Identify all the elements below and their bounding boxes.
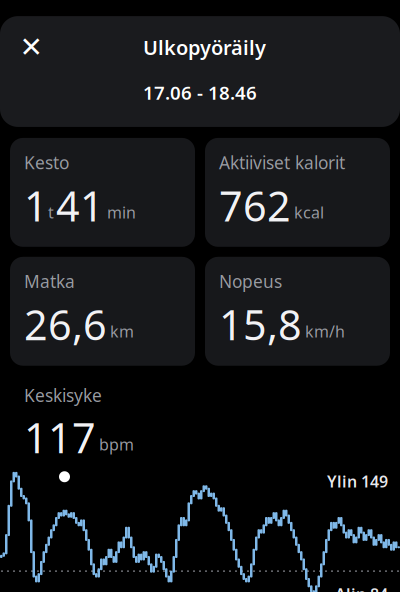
staticText: 117 (24, 410, 96, 465)
staticText: Matka (24, 270, 75, 293)
staticText: Alin 84 (335, 583, 388, 592)
staticText: Kesto (24, 151, 69, 174)
staticText: 15,8 (219, 297, 302, 352)
staticText: min (107, 202, 136, 223)
staticText: bpm (99, 434, 134, 455)
staticText: ✕ (19, 31, 42, 63)
staticText: Ulkopyöräily (143, 34, 266, 60)
staticText: 26,6 (24, 297, 107, 352)
staticText: Aktiiviset kalorit (219, 151, 345, 174)
staticText: 41 (56, 178, 104, 233)
staticText: 17.06 - 18.46 (143, 80, 257, 105)
staticText: 1 (24, 178, 48, 233)
staticText: km (110, 321, 134, 342)
staticText: 762 (219, 178, 291, 233)
button[interactable]: Close (9, 25, 53, 69)
staticText: kcal (294, 202, 324, 223)
staticText: Nopeus (219, 270, 282, 293)
staticText: km/h (305, 321, 345, 342)
staticText: Ylin 149 (327, 471, 388, 492)
staticText: Keskisyke (24, 384, 102, 407)
staticText: t (48, 202, 54, 223)
